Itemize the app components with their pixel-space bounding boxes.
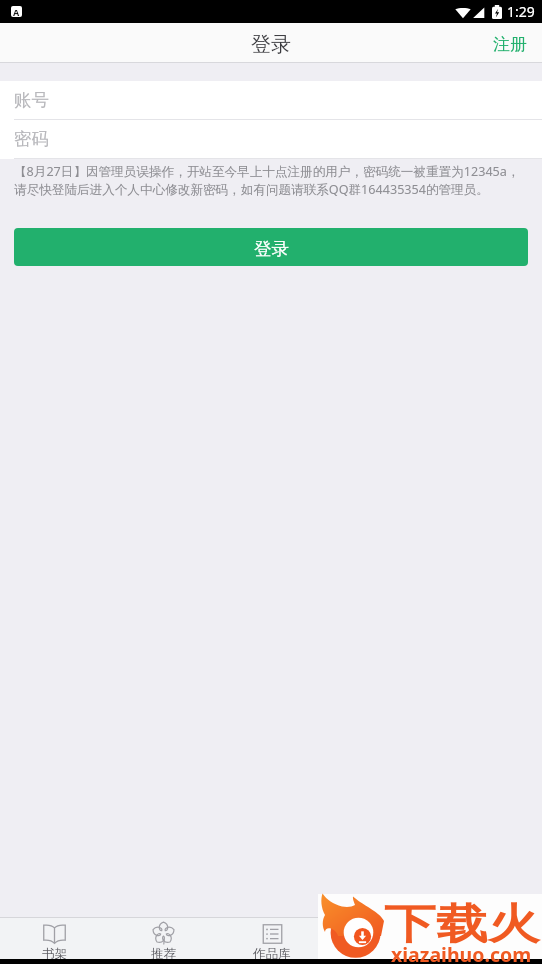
button[interactable]: 注册 — [478, 25, 542, 64]
staticText: 密码 — [14, 128, 49, 150]
other: xiazaihuo.com watermark — [318, 894, 542, 959]
staticText: A — [13, 6, 20, 17]
staticText: 【8月27日】因管理员误操作，开站至今早上十点注册的用户，密码统一被重置为123… — [14, 163, 520, 198]
staticText: 注册 — [493, 34, 527, 55]
staticText: xiazaihuo.com — [391, 941, 532, 964]
staticText: 下载火 — [384, 898, 540, 950]
button[interactable]: 密码 — [0, 120, 542, 159]
button[interactable]: 推荐 — [109, 918, 218, 959]
button[interactable]: 书架 — [0, 918, 109, 959]
other: Signal — [472, 5, 486, 19]
staticText: 推荐 — [151, 946, 176, 959]
staticText: 1:29 — [507, 2, 535, 21]
other: Battery charging — [492, 5, 502, 19]
button[interactable]: 账号 — [0, 81, 542, 120]
staticText: 账号 — [14, 89, 49, 111]
staticText: 作品库 — [253, 946, 291, 959]
button[interactable]: 作品库 — [218, 918, 326, 959]
staticText: 登录 — [251, 32, 291, 57]
other: Wi-Fi — [455, 5, 471, 19]
button[interactable]: 登录 — [14, 228, 528, 266]
staticText: 书架 — [42, 946, 67, 959]
staticText: 登录 — [254, 238, 289, 260]
